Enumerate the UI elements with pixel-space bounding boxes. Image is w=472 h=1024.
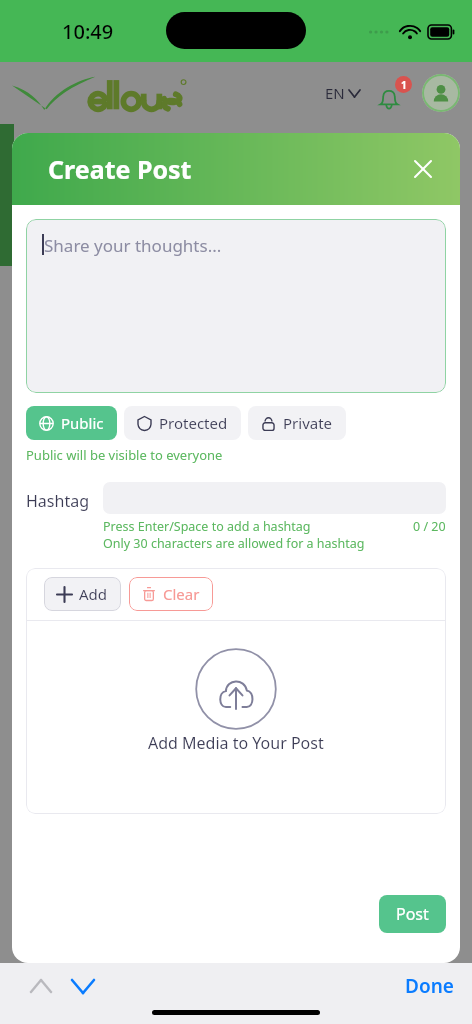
staticText: Create Post — [48, 152, 192, 186]
button[interactable]: Post — [379, 895, 446, 933]
staticText: EN — [325, 83, 345, 103]
button[interactable]: Profile — [422, 74, 460, 112]
staticText: Hashtag — [26, 490, 89, 512]
staticText: Clear — [163, 584, 200, 604]
staticText: Press Enter/Space to add a hashtag — [103, 518, 311, 535]
button[interactable]: Add media to your post — [26, 621, 446, 814]
staticText: Add — [79, 584, 108, 604]
button[interactable]: Close — [408, 154, 438, 184]
button[interactable]: Next field — [66, 969, 100, 1003]
staticText: Public will be visible to everyone — [26, 446, 223, 464]
button[interactable]: Add — [44, 577, 121, 611]
staticText: Only 30 characters are allowed for a has… — [103, 535, 365, 552]
button[interactable]: Done — [387, 967, 472, 1005]
staticText: Post — [396, 903, 429, 925]
staticText: 0 / 20 — [413, 518, 446, 535]
staticText: Done — [405, 973, 454, 999]
button[interactable]: Clear — [129, 577, 213, 611]
button[interactable]: Public — [26, 406, 117, 440]
button[interactable]: Previous field — [24, 969, 58, 1003]
staticText: Share your thoughts... — [44, 234, 222, 257]
staticText: Read more — [369, 960, 446, 974]
button[interactable]: Protected — [124, 406, 241, 440]
staticText: Protected — [159, 413, 228, 433]
button[interactable]: Notifications — [378, 76, 412, 110]
button[interactable]: EN — [321, 83, 364, 103]
button[interactable]: Share your thoughts... — [26, 219, 446, 393]
button[interactable]: Private — [248, 406, 346, 440]
staticText: Private — [283, 413, 333, 433]
staticText: 1 — [401, 78, 407, 92]
staticText: Public — [61, 413, 104, 433]
staticText: 10:49 — [62, 18, 114, 45]
staticText: Add Media to Your Post — [148, 732, 324, 754]
